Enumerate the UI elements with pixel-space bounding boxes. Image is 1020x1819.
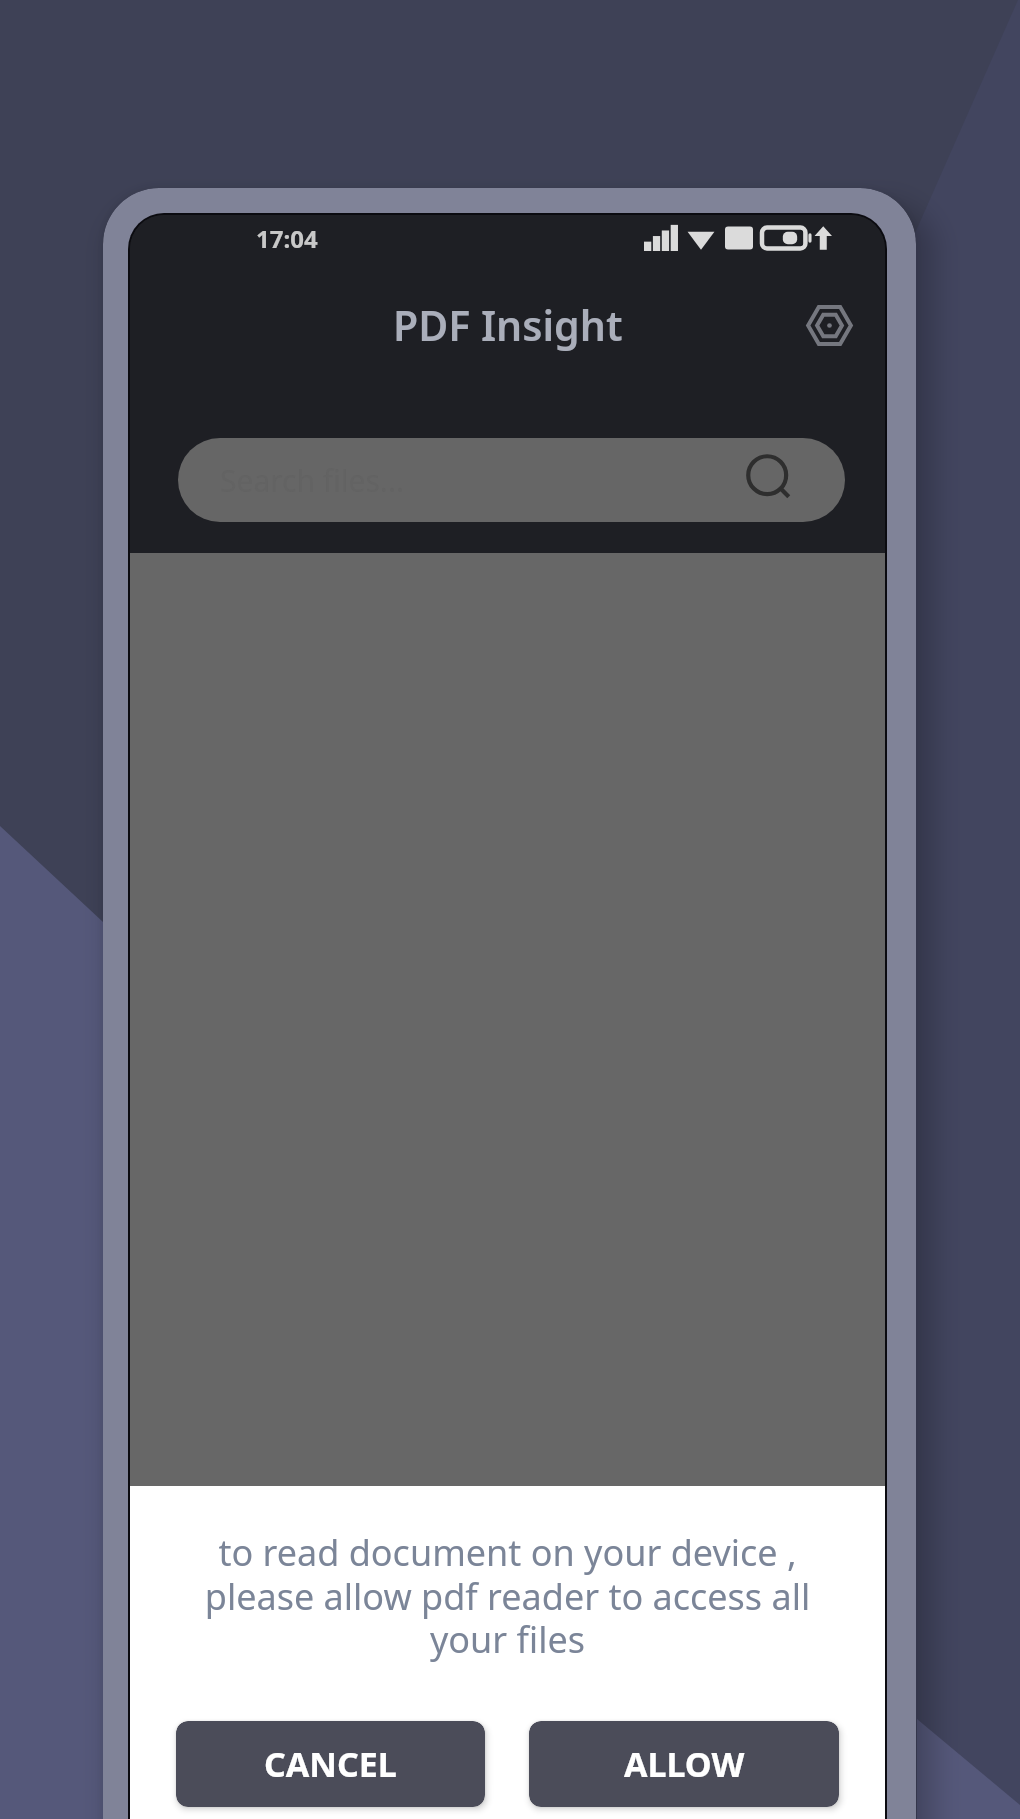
staticText: PDF Insight <box>393 297 623 353</box>
staticText: to read document on your device , please… <box>138 1528 877 1663</box>
staticText: ALLOW <box>624 1741 745 1787</box>
staticText: CANCEL <box>264 1741 397 1787</box>
button[interactable]: ALLOW <box>529 1721 839 1807</box>
button[interactable]: Search files... <box>178 438 845 522</box>
button[interactable]: Settings <box>801 297 857 353</box>
button[interactable]: CANCEL <box>176 1721 485 1807</box>
staticText: 17:04 <box>256 222 318 255</box>
